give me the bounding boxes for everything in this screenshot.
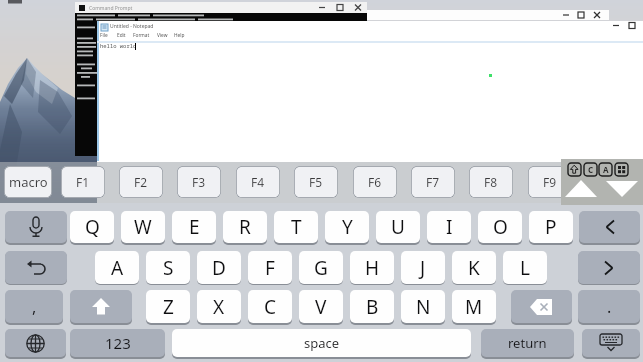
staticText: space bbox=[304, 334, 340, 352]
button[interactable] bbox=[568, 163, 581, 176]
button[interactable]: K bbox=[452, 251, 496, 284]
button[interactable] bbox=[5, 251, 67, 284]
staticText: L bbox=[520, 255, 530, 281]
button[interactable]: C bbox=[248, 290, 292, 323]
staticText: Format bbox=[133, 32, 150, 39]
staticText: A bbox=[603, 164, 609, 175]
button[interactable]: C bbox=[584, 163, 597, 176]
staticText: V bbox=[315, 294, 327, 320]
button[interactable]: S bbox=[146, 251, 190, 284]
button[interactable]: A bbox=[95, 251, 139, 284]
staticText: W bbox=[134, 214, 152, 240]
button[interactable]: H bbox=[350, 251, 394, 284]
button[interactable]: Q bbox=[70, 211, 114, 243]
button[interactable] bbox=[70, 290, 132, 323]
staticText: F2 bbox=[134, 174, 148, 190]
button[interactable] bbox=[511, 290, 572, 323]
button[interactable]: J bbox=[401, 251, 445, 284]
button[interactable]: R bbox=[223, 211, 267, 243]
staticText: D bbox=[212, 255, 226, 281]
staticText: F1 bbox=[76, 174, 90, 190]
staticText: , bbox=[32, 296, 37, 318]
button[interactable]: B bbox=[350, 290, 394, 323]
staticText: macro bbox=[9, 173, 48, 191]
staticText: R bbox=[239, 214, 251, 240]
staticText: B bbox=[366, 294, 379, 320]
button[interactable]: F9 bbox=[528, 166, 572, 198]
button[interactable]: G bbox=[299, 251, 343, 284]
button[interactable]: U bbox=[376, 211, 420, 243]
button[interactable]: F2 bbox=[119, 166, 163, 198]
staticText: T bbox=[291, 214, 302, 240]
staticText: F3 bbox=[192, 174, 206, 190]
staticText: M bbox=[465, 294, 483, 320]
staticText: C bbox=[588, 164, 594, 175]
staticText: Help bbox=[174, 32, 185, 39]
staticText: K bbox=[468, 255, 480, 281]
staticText: File bbox=[100, 32, 108, 39]
staticText: G bbox=[314, 255, 328, 281]
button[interactable]: macro bbox=[4, 166, 52, 198]
button[interactable]: X bbox=[197, 290, 241, 323]
button[interactable]: F3 bbox=[177, 166, 221, 198]
button[interactable]: V bbox=[299, 290, 343, 323]
button[interactable]: 123 bbox=[70, 329, 165, 357]
staticText: F6 bbox=[368, 174, 382, 190]
button[interactable]: F4 bbox=[236, 166, 280, 198]
button[interactable] bbox=[578, 251, 640, 284]
staticText: J bbox=[420, 255, 426, 281]
button[interactable]: space bbox=[172, 329, 471, 357]
staticText: P bbox=[545, 214, 557, 240]
button[interactable]: return bbox=[481, 329, 574, 357]
staticText: F bbox=[265, 255, 275, 281]
button[interactable] bbox=[5, 211, 67, 243]
staticText: C bbox=[264, 294, 277, 320]
button[interactable]: F6 bbox=[353, 166, 397, 198]
button[interactable] bbox=[582, 329, 640, 357]
button[interactable]: Z bbox=[146, 290, 190, 323]
staticText: H bbox=[365, 255, 380, 281]
button[interactable] bbox=[561, 177, 601, 201]
button[interactable]: P bbox=[529, 211, 573, 243]
button[interactable]: F1 bbox=[61, 166, 105, 198]
button[interactable]: T bbox=[274, 211, 318, 243]
staticText: F7 bbox=[426, 174, 440, 190]
staticText: I bbox=[446, 214, 453, 240]
staticText: . bbox=[607, 296, 612, 318]
staticText: U bbox=[391, 214, 405, 240]
staticText: S bbox=[163, 255, 174, 281]
button[interactable]: . bbox=[578, 290, 640, 323]
staticText: F5 bbox=[309, 174, 323, 190]
button[interactable]: O bbox=[478, 211, 522, 243]
button[interactable] bbox=[602, 177, 643, 201]
staticText: 123 bbox=[105, 333, 131, 353]
button[interactable]: A bbox=[599, 163, 612, 176]
button[interactable]: E bbox=[172, 211, 216, 243]
staticText: Q bbox=[85, 214, 100, 240]
button[interactable]: W bbox=[121, 211, 165, 243]
staticText: return bbox=[508, 334, 547, 352]
button[interactable]: I bbox=[427, 211, 471, 243]
button[interactable]: F bbox=[248, 251, 292, 284]
staticText: Command Prompt bbox=[89, 5, 133, 12]
button[interactable]: N bbox=[401, 290, 445, 323]
button[interactable]: F7 bbox=[411, 166, 455, 198]
staticText: N bbox=[416, 294, 431, 320]
button[interactable]: L bbox=[503, 251, 547, 284]
staticText: F9 bbox=[543, 174, 557, 190]
button[interactable] bbox=[615, 163, 628, 176]
button[interactable]: M bbox=[452, 290, 496, 323]
staticText: O bbox=[493, 214, 508, 240]
staticText: Edit bbox=[117, 32, 126, 39]
staticText: F4 bbox=[251, 174, 265, 190]
button[interactable] bbox=[5, 329, 66, 357]
button[interactable]: F5 bbox=[294, 166, 338, 198]
button[interactable]: D bbox=[197, 251, 241, 284]
button[interactable]: F8 bbox=[469, 166, 513, 198]
button[interactable] bbox=[579, 211, 640, 243]
button[interactable]: , bbox=[5, 290, 63, 323]
staticText: hello world bbox=[100, 42, 137, 49]
staticText: Z bbox=[163, 294, 174, 320]
staticText: A bbox=[111, 255, 124, 281]
button[interactable]: Y bbox=[325, 211, 369, 243]
